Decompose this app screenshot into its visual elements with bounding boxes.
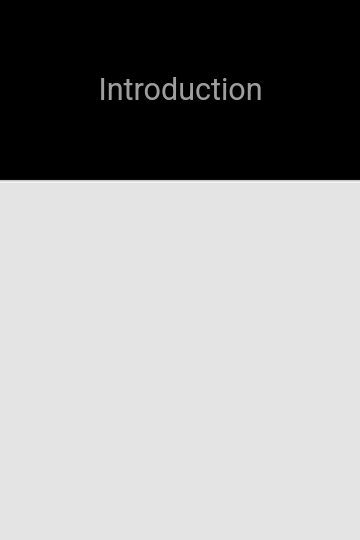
button[interactable]: Introduction (0, 0, 360, 179)
staticText: Introduction (98, 72, 263, 108)
